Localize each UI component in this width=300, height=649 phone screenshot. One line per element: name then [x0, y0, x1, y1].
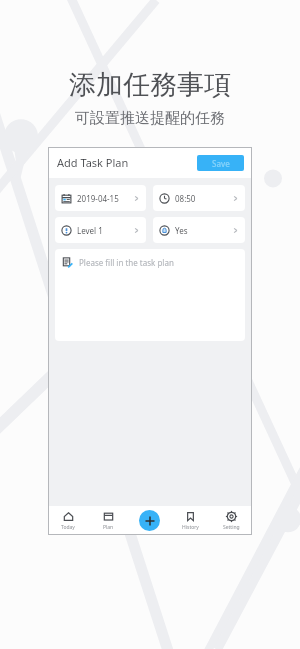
button[interactable]: Today [48, 506, 88, 535]
button[interactable]: Level 1 [55, 217, 146, 243]
button[interactable]: Setting [211, 506, 252, 535]
button[interactable]: Plan [88, 506, 129, 535]
staticText: Level 1 [77, 225, 103, 236]
button[interactable]: Save [197, 155, 244, 171]
button[interactable]: Yes [153, 217, 245, 243]
staticText: Add Task Plan [57, 155, 129, 170]
staticText: History [182, 524, 199, 531]
staticText: Save [212, 158, 230, 169]
staticText: 08:50 [175, 193, 196, 204]
staticText: 可設置推送提醒的任務 [75, 109, 225, 128]
staticText: 添加任務事項 [69, 68, 231, 102]
staticText: Yes [175, 225, 188, 236]
button[interactable]: Add task [139, 510, 160, 531]
button[interactable]: 08:50 [153, 185, 245, 211]
staticText: Today [61, 524, 75, 531]
staticText: 2019-04-15 [77, 193, 119, 204]
button[interactable]: Please fill in the task plan [55, 249, 245, 341]
staticText: Setting [223, 524, 240, 531]
staticText: Please fill in the task plan [79, 257, 174, 268]
button[interactable]: History [170, 506, 211, 535]
staticText: Plan [103, 524, 114, 531]
button[interactable]: 2019-04-15 [55, 185, 146, 211]
